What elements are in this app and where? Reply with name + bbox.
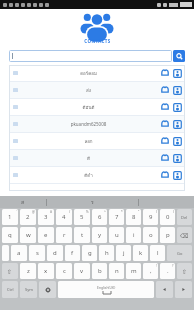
button[interactable]: ดีดำ — [9, 167, 185, 183]
button[interactable]: 1 — [2, 209, 18, 225]
button[interactable]: ลอก — [9, 133, 185, 149]
button[interactable]: u — [109, 227, 124, 243]
staticText: ) — [173, 210, 174, 214]
button[interactable]: ⇧ — [177, 263, 192, 279]
button[interactable]: pkuandm625008 — [9, 116, 185, 132]
button[interactable]: Contact details — [171, 67, 183, 79]
staticText: % — [86, 210, 89, 214]
button[interactable]: Add to cloud — [159, 84, 171, 96]
staticText: z — [27, 267, 30, 275]
button[interactable]: t — [74, 227, 90, 243]
button[interactable]: Del — [177, 209, 192, 225]
button[interactable]: e — [38, 227, 54, 243]
button[interactable]: 5 — [74, 209, 90, 225]
button[interactable] — [9, 50, 172, 62]
button[interactable]: r — [56, 227, 72, 243]
button[interactable]: f — [65, 245, 80, 261]
staticText: y — [98, 231, 102, 239]
button[interactable]: n — [109, 263, 124, 279]
button[interactable]: z — [20, 263, 36, 279]
button[interactable]: y — [92, 227, 107, 243]
staticText: w — [26, 231, 31, 239]
button[interactable]: Add to cloud — [159, 118, 171, 130]
button[interactable]: Contact details — [171, 169, 183, 181]
staticText: ⇧ — [7, 268, 13, 275]
button[interactable]: Settings — [39, 281, 56, 298]
staticText: r — [63, 231, 66, 239]
button[interactable]: x — [38, 263, 54, 279]
button[interactable]: Add to cloud — [159, 152, 171, 164]
button[interactable]: a — [11, 245, 27, 261]
button[interactable]: Contact details — [171, 84, 183, 96]
button[interactable]: h — [99, 245, 114, 261]
button[interactable]: q — [2, 227, 18, 243]
button[interactable]: ส — [0, 196, 46, 208]
button[interactable]: Search — [173, 50, 185, 62]
staticText: 8 — [132, 213, 136, 221]
button[interactable]: m — [126, 263, 141, 279]
staticText: s — [36, 249, 39, 257]
staticText: ` — [16, 210, 17, 214]
button[interactable]: Contact details — [171, 118, 183, 130]
button[interactable]: Contact details — [171, 101, 183, 113]
button[interactable]: Contact details — [171, 152, 183, 164]
staticText: i — [133, 231, 135, 239]
staticText: j — [123, 249, 125, 257]
staticText: v — [80, 267, 84, 275]
button[interactable]: i — [126, 227, 141, 243]
staticText: l — [157, 249, 159, 257]
button[interactable]: Add to cloud — [159, 101, 171, 113]
staticText: ⌫ — [180, 232, 189, 239]
button[interactable]: ⌫ — [177, 227, 192, 243]
button[interactable]: c — [56, 263, 72, 279]
button[interactable]: s — [29, 245, 45, 261]
button[interactable]: Add to cloud — [159, 135, 171, 147]
staticText: ลอก — [18, 138, 159, 145]
button[interactable]: . — [160, 263, 175, 279]
button[interactable]: Sym — [20, 281, 37, 298]
button[interactable]: 2 — [20, 209, 36, 225]
staticText: ดีมันดี — [18, 104, 159, 111]
button[interactable]: Left — [156, 281, 173, 298]
button[interactable]: 3 — [38, 209, 54, 225]
button[interactable]: l — [150, 245, 165, 261]
button[interactable]: Contact details — [171, 135, 183, 147]
button[interactable]: ดี — [9, 150, 185, 166]
button[interactable]: k — [133, 245, 148, 261]
button[interactable]: 8 — [126, 209, 141, 225]
button[interactable]: Go — [167, 245, 192, 261]
button[interactable]: 4 — [56, 209, 72, 225]
staticText: k — [139, 249, 143, 257]
button[interactable]: j — [116, 245, 131, 261]
button[interactable]: Space — [58, 281, 154, 298]
staticText: pkuandm625008 — [18, 121, 159, 127]
button[interactable] — [2, 245, 9, 261]
staticText: f — [71, 249, 74, 257]
button[interactable]: 0 — [160, 209, 175, 225]
staticText: ส่ง — [18, 87, 159, 94]
staticText: ดอร์คอม — [18, 70, 159, 77]
button[interactable]: d — [47, 245, 63, 261]
button[interactable]: ดีมันดี — [9, 99, 185, 115]
button[interactable]: o — [143, 227, 158, 243]
button[interactable]: g — [82, 245, 97, 261]
button[interactable]: Add to cloud — [159, 169, 171, 181]
button[interactable]: 6 — [92, 209, 107, 225]
staticText: ^ — [104, 210, 106, 214]
button[interactable]: v — [74, 263, 90, 279]
button[interactable]: 9 — [143, 209, 158, 225]
button[interactable]: w — [20, 227, 36, 243]
button[interactable]: Add to cloud — [159, 67, 171, 79]
staticText: ดีดำ — [18, 172, 159, 179]
button[interactable]: , — [143, 263, 158, 279]
staticText: Del — [181, 215, 188, 220]
button[interactable]: ส่ง — [9, 82, 185, 98]
button[interactable]: Right — [175, 281, 192, 298]
button[interactable]: ดอร์คอม — [9, 65, 185, 81]
button[interactable]: Ctrl — [2, 281, 18, 298]
button[interactable]: 7 — [109, 209, 124, 225]
button[interactable]: ⇧ — [2, 263, 18, 279]
button[interactable]: p — [160, 227, 175, 243]
button[interactable]: b — [92, 263, 107, 279]
